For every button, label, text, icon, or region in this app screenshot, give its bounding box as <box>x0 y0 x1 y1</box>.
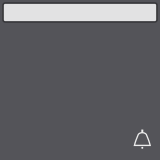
button[interactable]: Notifications <box>134 130 150 149</box>
